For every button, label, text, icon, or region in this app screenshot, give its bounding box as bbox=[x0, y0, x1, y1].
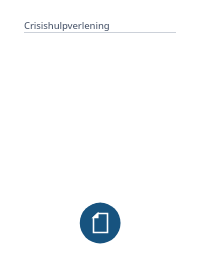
staticText: Crisishulpverlening bbox=[24, 19, 110, 32]
button[interactable]: New document bbox=[79, 202, 122, 245]
